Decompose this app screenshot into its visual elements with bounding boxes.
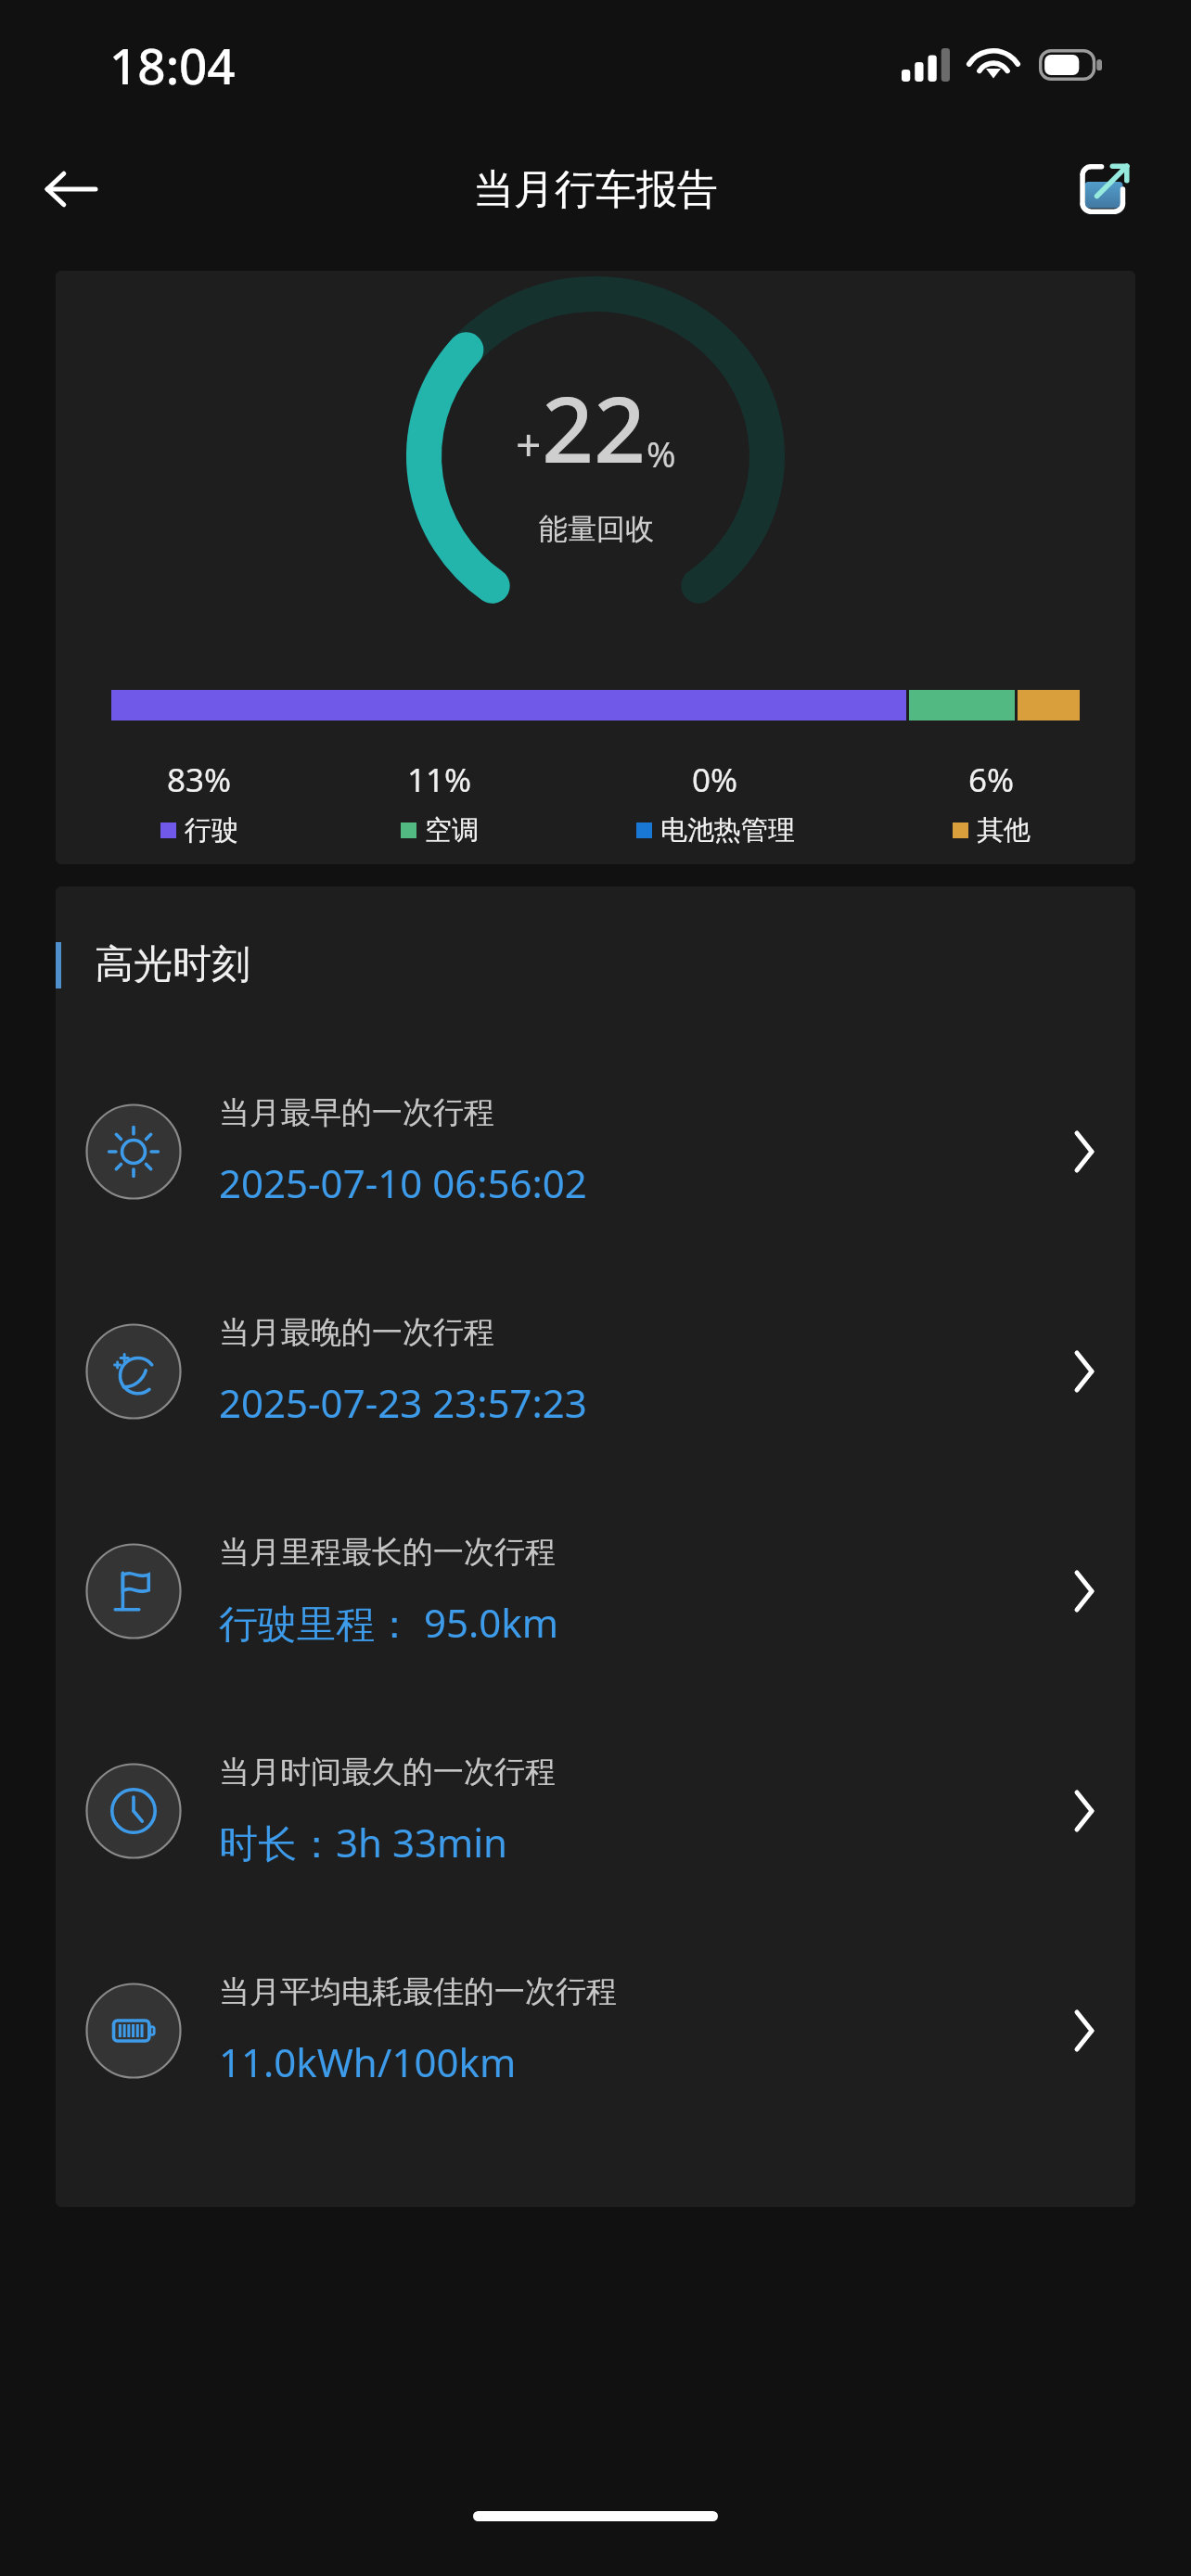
staticText: 时长：3h 33min — [219, 1816, 508, 1868]
staticText: 当月行车报告 — [473, 164, 718, 215]
staticText: 行驶里程： 95.0km — [219, 1596, 558, 1649]
staticText: 当月平均电耗最佳的一次行程 — [219, 1972, 617, 2011]
staticText: 22 — [542, 365, 647, 489]
staticText: 当月最早的一次行程 — [219, 1093, 494, 1132]
staticText: 当月时间最久的一次行程 — [219, 1753, 556, 1792]
staticText: 电池热管理 — [660, 813, 795, 848]
staticText: 当月里程最长的一次行程 — [219, 1533, 556, 1572]
staticText: 83% — [167, 758, 232, 802]
staticText: 能量回收 — [539, 511, 654, 547]
button[interactable]: 当月最早的一次行程 — [56, 1041, 1135, 1261]
staticText: 其他 — [977, 813, 1031, 848]
staticText: 2025-07-10 06:56:02 — [219, 1156, 587, 1209]
staticText: 6% — [968, 758, 1015, 802]
button[interactable]: 当月平均电耗最佳的一次行程 — [56, 1920, 1135, 2140]
staticText: 高光时刻 — [95, 940, 250, 989]
staticText: % — [647, 429, 676, 478]
staticText: 空调 — [425, 813, 479, 848]
staticText: 11% — [407, 758, 472, 802]
button[interactable]: 当月时间最久的一次行程 — [56, 1701, 1135, 1920]
button[interactable]: Share — [1061, 147, 1146, 232]
button[interactable]: 当月最晚的一次行程 — [56, 1261, 1135, 1481]
button[interactable]: 当月里程最长的一次行程 — [56, 1481, 1135, 1701]
button[interactable]: Back — [22, 141, 119, 237]
staticText: 0% — [692, 758, 738, 802]
staticText: + — [516, 414, 542, 474]
staticText: 2025-07-23 23:57:23 — [219, 1376, 587, 1429]
staticText: 当月最晚的一次行程 — [219, 1313, 494, 1352]
staticText: 11.0kWh/100km — [219, 2035, 517, 2088]
staticText: 行驶 — [185, 813, 238, 848]
staticText: 18:04 — [109, 32, 236, 98]
